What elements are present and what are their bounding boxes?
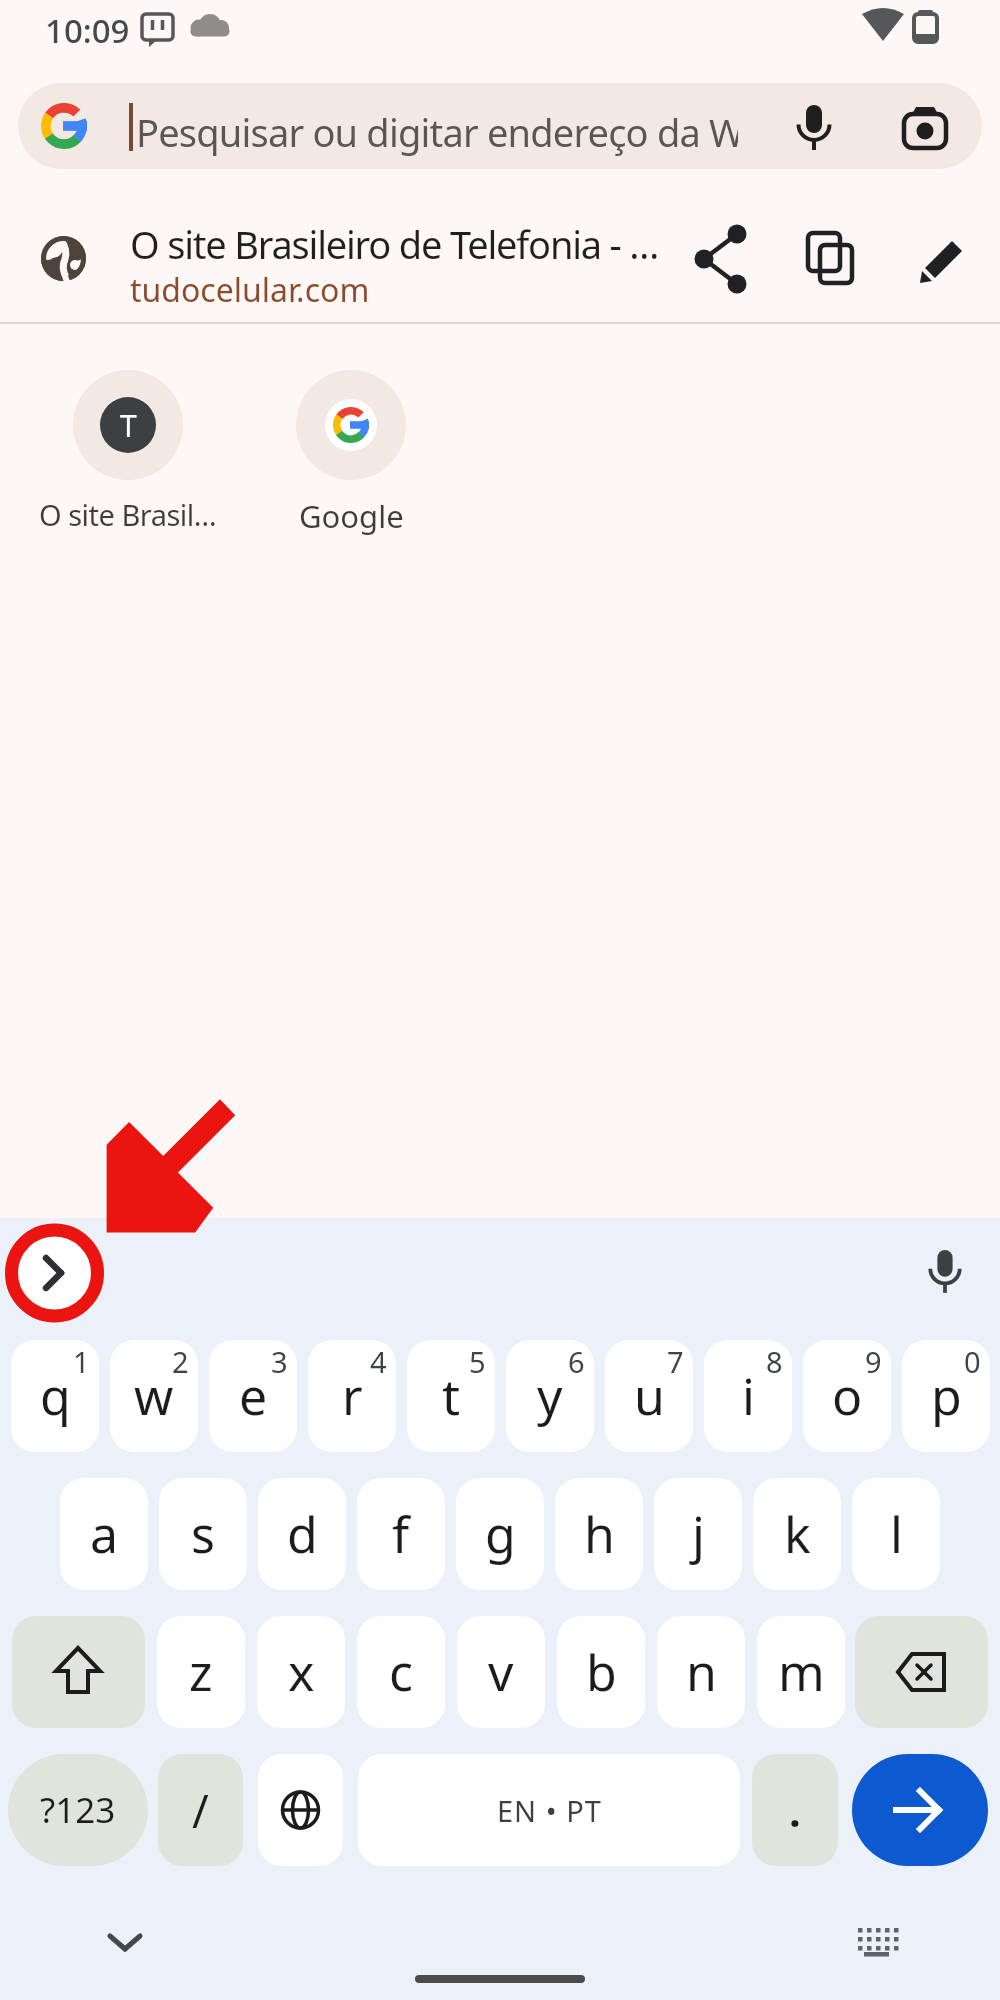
button[interactable]: o <box>803 1340 891 1452</box>
button[interactable] <box>20 200 670 318</box>
button[interactable] <box>795 224 865 294</box>
button[interactable] <box>840 1908 910 1978</box>
staticText: 2 <box>172 1342 189 1381</box>
button[interactable]: ?123 <box>8 1754 148 1866</box>
staticText: r <box>342 1362 363 1430</box>
button[interactable]: u <box>605 1340 693 1452</box>
staticText: n <box>686 1638 717 1706</box>
staticText: i <box>742 1362 755 1430</box>
staticText: q <box>40 1362 71 1430</box>
staticText: O site Brasil… <box>39 495 217 534</box>
staticText: m <box>778 1638 825 1706</box>
staticText: / <box>192 1780 209 1841</box>
button[interactable]: c <box>357 1616 445 1728</box>
staticText: Pesquisar ou digitar endereço da Web <box>136 106 738 158</box>
staticText: a <box>90 1500 119 1568</box>
button[interactable]: x <box>257 1616 345 1728</box>
staticText: b <box>586 1638 617 1706</box>
staticText: 9 <box>865 1342 882 1381</box>
staticText: w <box>134 1362 174 1430</box>
staticText: 7 <box>667 1342 684 1381</box>
staticText: s <box>191 1500 215 1568</box>
staticText: d <box>287 1500 318 1568</box>
staticText: h <box>584 1500 615 1568</box>
button[interactable]: i <box>704 1340 792 1452</box>
staticText: 5 <box>469 1342 486 1381</box>
staticText: 6 <box>568 1342 585 1381</box>
staticText: 0 <box>964 1342 981 1381</box>
button[interactable]: EN • PT <box>358 1754 740 1866</box>
button[interactable]: l <box>852 1478 940 1590</box>
staticText: T <box>120 405 137 446</box>
staticText: 8 <box>766 1342 783 1381</box>
button[interactable]: e <box>209 1340 297 1452</box>
button[interactable]: f <box>357 1478 445 1590</box>
staticText: O site Brasileiro de Telefonia - … <box>130 218 659 270</box>
staticText: k <box>784 1500 811 1568</box>
button[interactable]: v <box>457 1616 545 1728</box>
button[interactable]: p <box>902 1340 990 1452</box>
button[interactable]: d <box>258 1478 346 1590</box>
button[interactable] <box>687 224 757 294</box>
staticText: j <box>692 1500 705 1568</box>
button[interactable] <box>855 1616 988 1728</box>
button[interactable]: y <box>506 1340 594 1452</box>
button[interactable]: n <box>657 1616 745 1728</box>
staticText: g <box>485 1500 516 1568</box>
staticText: t <box>442 1362 461 1430</box>
button[interactable]: T <box>73 370 183 480</box>
button[interactable] <box>852 1754 988 1866</box>
staticText: 1 <box>73 1342 90 1381</box>
button[interactable]: h <box>555 1478 643 1590</box>
button[interactable]: z <box>157 1616 245 1728</box>
staticText: ?123 <box>40 1786 116 1834</box>
button[interactable] <box>258 1754 343 1866</box>
button[interactable]: j <box>654 1478 742 1590</box>
button[interactable] <box>90 1908 160 1978</box>
staticText: Google <box>299 495 404 537</box>
button[interactable] <box>910 1237 982 1309</box>
button[interactable]: / <box>158 1754 243 1866</box>
staticText: EN • PT <box>497 1791 602 1830</box>
staticText: v <box>488 1638 514 1706</box>
button[interactable]: k <box>753 1478 841 1590</box>
button[interactable]: a <box>60 1478 148 1590</box>
button[interactable] <box>18 83 982 169</box>
staticText: u <box>634 1362 665 1430</box>
button[interactable]: w <box>110 1340 198 1452</box>
staticText: y <box>537 1362 563 1430</box>
button[interactable]: s <box>159 1478 247 1590</box>
staticText: 4 <box>370 1342 387 1381</box>
button[interactable]: q <box>11 1340 99 1452</box>
staticText: p <box>931 1362 962 1430</box>
staticText: l <box>890 1500 903 1568</box>
button[interactable]: r <box>308 1340 396 1452</box>
button[interactable]: t <box>407 1340 495 1452</box>
staticText: 3 <box>271 1342 288 1381</box>
staticText: o <box>832 1362 863 1430</box>
staticText: z <box>189 1638 213 1706</box>
staticText: f <box>392 1500 410 1568</box>
button[interactable]: g <box>456 1478 544 1590</box>
button[interactable]: m <box>757 1616 845 1728</box>
button[interactable] <box>909 224 979 294</box>
button[interactable] <box>18 1237 91 1310</box>
staticText: c <box>389 1638 413 1706</box>
button[interactable] <box>296 370 406 480</box>
button[interactable]: . <box>752 1754 838 1866</box>
staticText: 10:09 <box>45 8 130 53</box>
button[interactable] <box>779 93 849 163</box>
staticText: . <box>789 1782 801 1839</box>
staticText: x <box>288 1638 315 1706</box>
button[interactable] <box>890 93 960 163</box>
button[interactable] <box>12 1616 145 1728</box>
staticText: e <box>239 1362 268 1430</box>
staticText: tudocelular.com <box>130 268 370 312</box>
button[interactable]: b <box>557 1616 645 1728</box>
